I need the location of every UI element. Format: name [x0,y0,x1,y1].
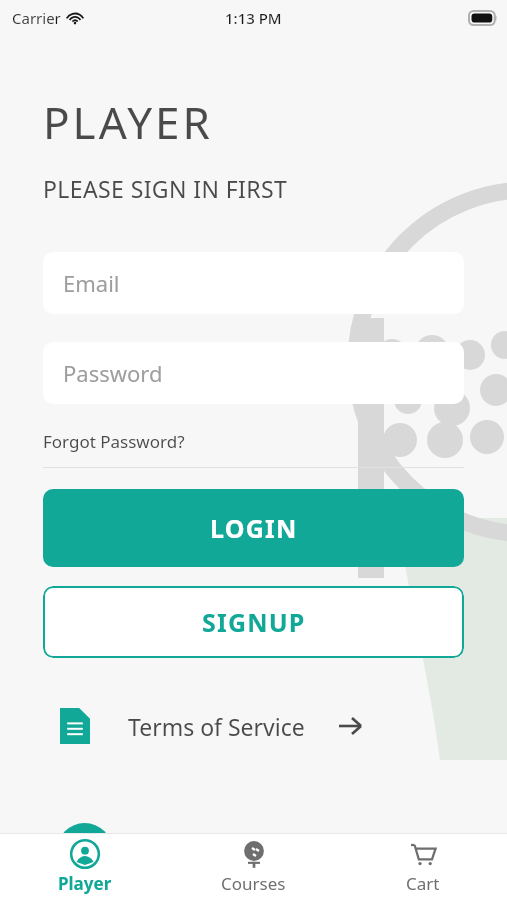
staticText: Email [63,268,120,298]
staticText: PLEASE SIGN IN FIRST [43,173,288,204]
staticText: Forgot Password? [43,430,185,453]
staticText: Carrier [12,8,61,28]
button[interactable]: Courses [169,833,338,900]
staticText: 1:13 PM [225,8,282,28]
staticText: PLAYER [43,92,213,152]
staticText: LOGIN [210,511,298,545]
staticText: Password [63,358,163,388]
button[interactable]: Forgot Password? [43,428,185,455]
button[interactable]: SIGNUP [43,586,464,658]
button[interactable]: Password [43,342,464,404]
staticText: SIGNUP [202,605,306,639]
button[interactable]: LOGIN [43,489,464,567]
button[interactable]: Cart [338,833,507,900]
staticText: Cart [406,872,440,895]
button[interactable]: Player [0,833,169,900]
staticText: Courses [221,872,286,895]
button[interactable]: Email [43,252,464,314]
staticText: Terms of Service [128,711,305,742]
staticText: Player [58,872,112,895]
button[interactable]: Terms of Service [0,702,507,750]
